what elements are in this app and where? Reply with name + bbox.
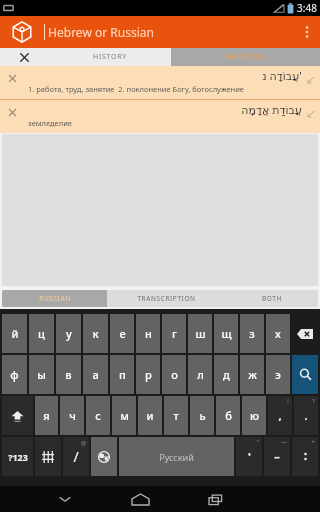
staticText: / (73, 447, 79, 466)
staticText: и (146, 408, 154, 423)
button[interactable]: е (110, 314, 134, 353)
staticText: щ (221, 326, 232, 341)
button[interactable]: ф (2, 355, 27, 394)
staticText: 1. работа, труд, занятие 2. поклонение Б… (28, 84, 244, 94)
staticText: о (171, 367, 178, 382)
button[interactable]: з (240, 314, 264, 353)
button[interactable]: RUSSIAN (2, 290, 107, 307)
button[interactable]: ю (242, 396, 266, 435)
button[interactable]: р (136, 355, 160, 394)
button[interactable]: BOTH (225, 290, 318, 307)
button[interactable]: ?123 (2, 437, 33, 476)
button[interactable]: д (214, 355, 238, 394)
button[interactable]: ? (294, 396, 318, 435)
staticText: ? (312, 397, 315, 404)
staticText: , (278, 408, 282, 423)
button[interactable]: х (266, 314, 290, 353)
button[interactable]: н (136, 314, 160, 353)
staticText: й (11, 326, 19, 341)
staticText: н (145, 326, 152, 341)
button[interactable]: Shift (2, 396, 33, 435)
staticText: BOTH (262, 294, 282, 303)
button[interactable]: ж (240, 355, 264, 394)
button[interactable]: о (162, 355, 186, 394)
button[interactable]: " (236, 437, 262, 476)
button[interactable]: в (56, 355, 81, 394)
button[interactable]: п (110, 355, 134, 394)
button[interactable]: App icon (0, 16, 44, 48)
button[interactable]: + (292, 437, 318, 476)
button[interactable]: Home (116, 486, 165, 512)
button[interactable]: Backspace (292, 314, 318, 353)
staticText: к (92, 326, 99, 341)
button[interactable]: @ (63, 437, 89, 476)
button[interactable]: Remove (7, 107, 17, 117)
button[interactable]: ш (188, 314, 212, 353)
button[interactable]: а (83, 355, 108, 394)
button[interactable]: Remove (0, 100, 320, 133)
button[interactable]: Change language (91, 437, 117, 476)
staticText: я (43, 408, 50, 423)
staticText: ' (248, 449, 251, 464)
button[interactable]: Close (0, 48, 48, 66)
button[interactable]: у (56, 314, 81, 353)
button[interactable]: и (138, 396, 162, 435)
staticText: ! (287, 397, 289, 404)
staticText: земледелие (28, 118, 72, 128)
staticText: д (223, 367, 230, 382)
button[interactable]: й (2, 314, 27, 353)
staticText: т (173, 408, 179, 423)
button[interactable]: Recent apps (192, 486, 241, 512)
button[interactable]: Русский (119, 437, 234, 476)
button[interactable]: к (83, 314, 108, 353)
staticText: ф (10, 367, 19, 382)
staticText: е (119, 326, 126, 341)
button[interactable]: Remove (0, 66, 320, 99)
button[interactable]: щ (214, 314, 238, 353)
button[interactable]: Remove (7, 73, 17, 83)
button[interactable]: — (264, 437, 290, 476)
staticText: RUSSIAN (39, 294, 71, 303)
button[interactable]: ч (60, 396, 84, 435)
staticText: ш (195, 326, 206, 341)
staticText: ы (37, 367, 46, 382)
button[interactable]: Input settings (35, 437, 61, 476)
button[interactable]: г (162, 314, 186, 353)
button[interactable]: More options (294, 16, 320, 48)
button[interactable]: ! (268, 396, 292, 435)
button[interactable]: ь (190, 396, 214, 435)
staticText: э (275, 367, 281, 382)
staticText: г (172, 326, 177, 341)
button[interactable]: Expand (306, 75, 315, 84)
button[interactable]: TRANSCRIPTION (107, 290, 225, 307)
staticText: х (275, 326, 281, 341)
button[interactable]: Expand (306, 109, 315, 118)
button[interactable]: м (112, 396, 136, 435)
staticText: б (225, 408, 232, 423)
staticText: ю (250, 408, 259, 423)
staticText: ?123 (8, 451, 28, 463)
staticText: м (120, 408, 129, 423)
button[interactable]: с (86, 396, 110, 435)
button[interactable]: HISTORY (48, 48, 171, 66)
staticText: л (197, 367, 204, 382)
button[interactable]: ц (29, 314, 54, 353)
staticText: ж (248, 367, 257, 382)
staticText: в (65, 367, 72, 382)
staticText: п (119, 367, 126, 382)
staticText: – (274, 449, 280, 464)
staticText: + (311, 438, 315, 446)
staticText: 3:48 (297, 1, 317, 15)
button[interactable]: т (164, 396, 188, 435)
button[interactable]: э (266, 355, 290, 394)
button[interactable]: я (35, 396, 58, 435)
staticText: Русский (159, 451, 194, 463)
button[interactable]: FAVORITES (171, 48, 320, 66)
button[interactable]: Search (292, 355, 318, 394)
button[interactable]: ы (29, 355, 54, 394)
staticText: TRANSCRIPTION (137, 294, 196, 303)
staticText: ь (199, 408, 206, 423)
button[interactable]: л (188, 355, 212, 394)
button[interactable]: Back (40, 486, 89, 512)
button[interactable]: б (216, 396, 240, 435)
